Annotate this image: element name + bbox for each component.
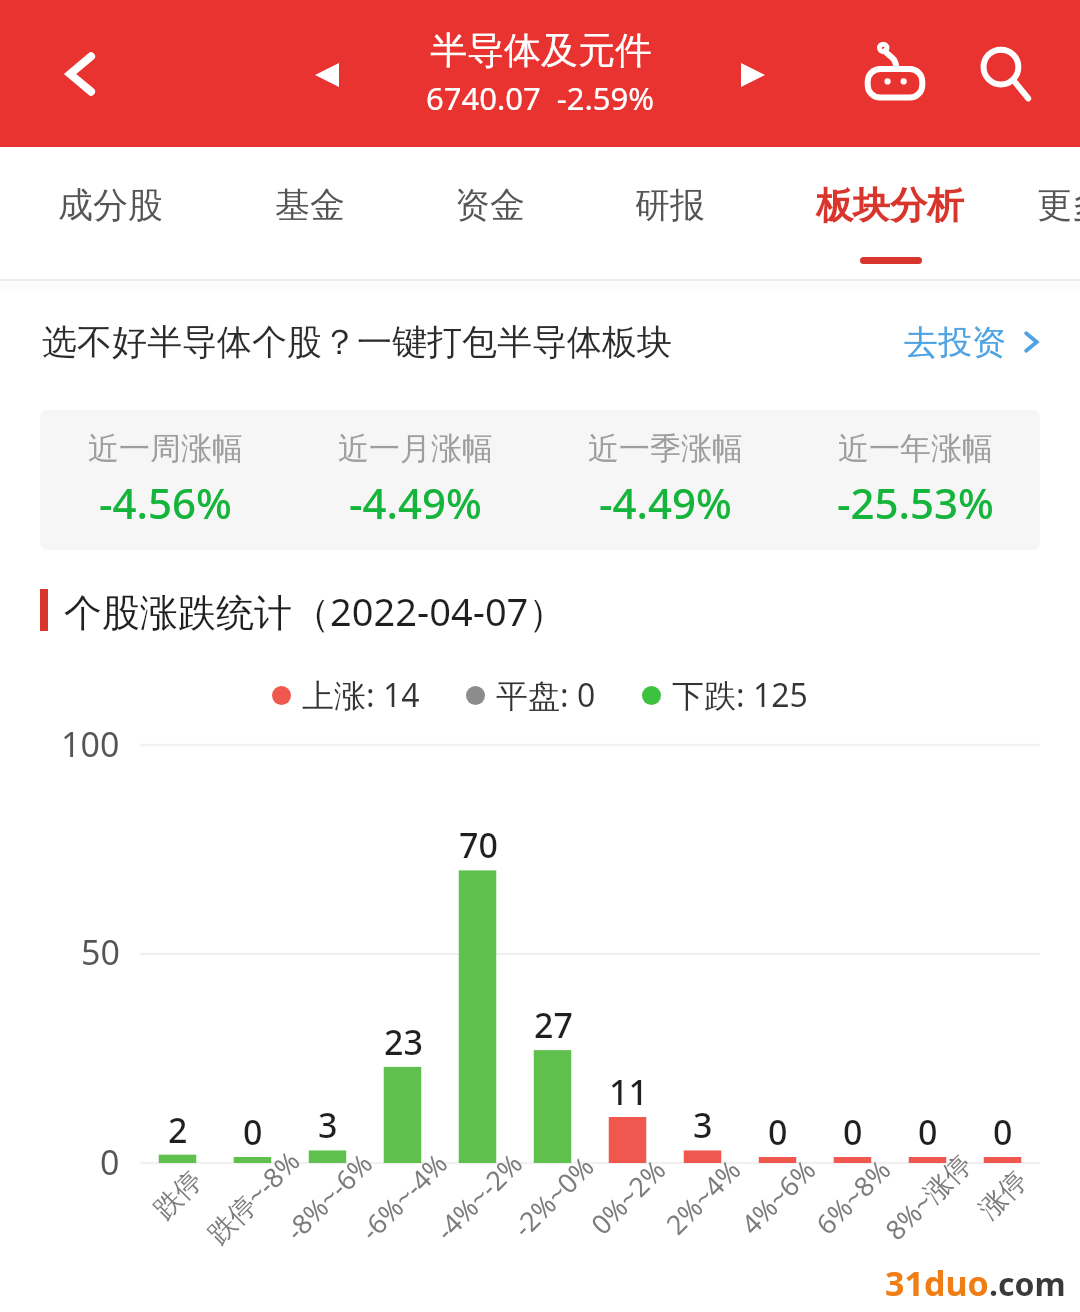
staticText: 跌停 <box>147 1164 209 1226</box>
staticText: -4%~-2% <box>427 1145 530 1248</box>
button[interactable]: AI assistant <box>858 37 932 111</box>
staticText: 平盘: 0 <box>496 673 596 717</box>
button[interactable]: 上涨: 14 <box>272 673 420 717</box>
button[interactable]: 更多 <box>980 147 1080 279</box>
staticText: 11 <box>609 1069 648 1115</box>
staticText: 50 <box>81 929 120 975</box>
staticText: -6%~-4% <box>352 1145 455 1248</box>
staticText: 上涨: 14 <box>302 673 420 717</box>
staticText: -4.49% <box>349 474 482 531</box>
staticText: 涨停 <box>972 1164 1034 1226</box>
staticText: 板块分析 <box>816 182 964 229</box>
button[interactable]: 下跌: 125 <box>642 673 808 717</box>
button[interactable]: 近一季涨幅 <box>540 410 790 550</box>
staticText: 0 <box>918 1109 938 1155</box>
staticText: 3 <box>318 1102 338 1148</box>
staticText: 0 <box>243 1109 263 1155</box>
staticText: 去投资 <box>904 321 1006 364</box>
button[interactable]: 基金 <box>218 147 402 279</box>
staticText: 资金 <box>455 183 525 227</box>
staticText: 31duo <box>885 1260 989 1306</box>
button[interactable]: 近一年涨幅 <box>790 410 1040 550</box>
button[interactable]: Back <box>50 43 112 105</box>
staticText: 0 <box>993 1109 1013 1155</box>
staticText: 70 <box>459 822 498 868</box>
staticText: 基金 <box>275 183 345 227</box>
button[interactable]: 板块分析 <box>798 147 982 279</box>
staticText: 27 <box>534 1002 573 1048</box>
button[interactable]: 选不好半导体个股？一键打包半导体板块 <box>0 291 1080 393</box>
button[interactable]: 资金 <box>398 147 582 279</box>
staticText: 6%~8% <box>807 1151 899 1242</box>
staticText: 近一周涨幅 <box>88 429 243 468</box>
staticText: 个股涨跌统计（2022-04-07） <box>64 585 567 635</box>
staticText: 近一季涨幅 <box>588 429 743 468</box>
staticText: 下跌: 125 <box>672 673 808 717</box>
staticText: 选不好半导体个股？一键打包半导体板块 <box>42 320 672 364</box>
staticText: 0 <box>768 1109 788 1155</box>
staticText: .com <box>989 1262 1066 1306</box>
staticText: -8%~-6% <box>277 1145 380 1248</box>
staticText: 8%~涨停 <box>877 1145 979 1248</box>
staticText: 半导体及元件 <box>430 27 652 74</box>
staticText: 3 <box>693 1102 713 1148</box>
button[interactable]: 近一月涨幅 <box>290 410 540 550</box>
staticText: 2 <box>168 1107 188 1153</box>
staticText: -2%~0% <box>505 1148 601 1245</box>
button[interactable]: 成分股 <box>18 147 202 279</box>
staticText: 更多 <box>1037 183 1080 227</box>
staticText: 100 <box>61 721 120 767</box>
button[interactable]: Previous sector <box>303 51 351 99</box>
staticText: -4.49% <box>599 474 732 531</box>
button[interactable]: Next sector <box>729 51 777 99</box>
button[interactable]: 平盘: 0 <box>466 673 596 717</box>
staticText: 成分股 <box>58 183 163 227</box>
staticText: 2%~4% <box>657 1151 749 1242</box>
staticText: 研报 <box>635 183 705 227</box>
button[interactable]: Search <box>968 37 1042 111</box>
staticText: 6740.07 -2.59% <box>426 77 655 119</box>
staticText: -25.53% <box>837 474 994 531</box>
staticText: -4.56% <box>99 474 232 531</box>
staticText: 23 <box>384 1019 423 1065</box>
button[interactable]: 近一周涨幅 <box>40 410 290 550</box>
staticText: 0 <box>843 1109 863 1155</box>
staticText: 近一年涨幅 <box>838 429 993 468</box>
staticText: 0%~2% <box>582 1151 674 1242</box>
staticText: 0 <box>100 1139 120 1185</box>
staticText: 近一月涨幅 <box>338 429 493 468</box>
staticText: 4%~6% <box>732 1151 824 1242</box>
button[interactable]: 研报 <box>578 147 762 279</box>
staticText: 跌停~-8% <box>199 1142 308 1251</box>
